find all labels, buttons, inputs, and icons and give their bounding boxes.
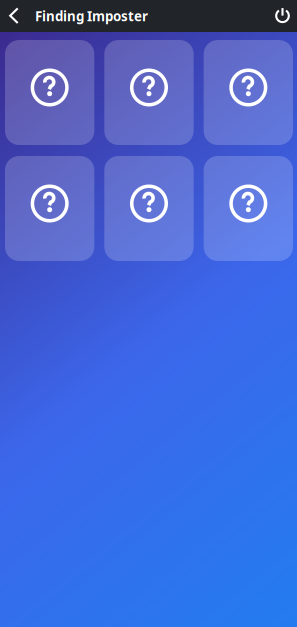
button[interactable]: Unrevealed player	[5, 156, 94, 261]
button[interactable]: Unrevealed player	[104, 40, 194, 145]
button[interactable]: Back	[0, 0, 28, 32]
staticText: Finding Imposter	[35, 7, 148, 25]
button[interactable]: Unrevealed player	[204, 156, 293, 261]
button[interactable]: Unrevealed player	[204, 40, 293, 145]
button[interactable]: Leave game	[265, 0, 297, 32]
button[interactable]: Unrevealed player	[5, 40, 94, 145]
button[interactable]: Unrevealed player	[104, 156, 194, 261]
